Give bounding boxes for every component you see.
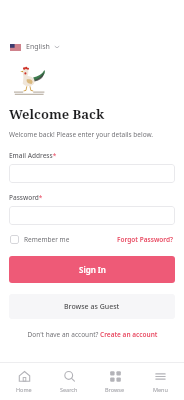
staticText: Menu [153,386,168,393]
button[interactable]: Home [3,367,45,396]
staticText: English [26,42,50,52]
button[interactable]: English [8,40,62,54]
staticText: Sign In [79,264,106,275]
staticText: Don't have an account? Create an account [27,330,158,339]
button[interactable]: Remember me [9,234,71,245]
staticText: Welcome Back [9,105,105,123]
staticText: Browse as Guest [64,302,120,312]
button[interactable]: Menu [139,367,181,396]
staticText: Browse [105,386,125,393]
button[interactable] [9,206,175,225]
staticText: Email Address* [9,151,57,160]
button[interactable]: Browse [94,367,136,396]
staticText: Forgot Password? [117,235,174,244]
button[interactable]: Sign In [9,256,175,283]
staticText: Password* [9,193,43,202]
button[interactable]: Search [48,367,90,396]
button[interactable]: Don't have an account? Create an account [9,330,175,339]
button[interactable]: Browse as Guest [9,294,175,319]
staticText: Search [60,386,78,393]
staticText: Remember me [24,235,70,244]
button[interactable] [9,164,175,183]
staticText: Welcome back! Please enter your details … [9,130,154,139]
staticText: Home [16,386,32,393]
button[interactable]: Forgot Password? [116,234,175,245]
